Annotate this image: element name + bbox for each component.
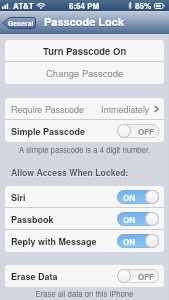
- staticText: Allow Access When Locked:: [11, 167, 129, 179]
- staticText: Erase all data on this iPhone: [5, 288, 164, 299]
- staticText: Require Passcode: [11, 103, 85, 116]
- staticText: OFF: [138, 271, 154, 282]
- staticText: ON: [123, 214, 135, 225]
- staticText: ON: [123, 236, 135, 247]
- button[interactable]: Require Passcode: [5, 98, 164, 120]
- staticText: A simple passcode is a 4 digit number.: [5, 144, 164, 155]
- button[interactable]: General: [2, 17, 36, 29]
- staticText: 6:54 PM: [69, 0, 100, 11]
- staticText: OFF: [138, 126, 154, 137]
- button[interactable]: On: [117, 212, 159, 226]
- staticText: 85%: [135, 0, 152, 11]
- button[interactable]: On: [117, 190, 159, 204]
- button[interactable]: Erase Data: [5, 265, 164, 287]
- button[interactable]: Passbook: [5, 208, 164, 230]
- staticText: AT&T: [13, 0, 34, 11]
- button[interactable]: Siri: [5, 186, 164, 208]
- staticText: Allow Access When Locked:: [11, 166, 129, 178]
- staticText: Passcode Lock: [44, 15, 125, 31]
- staticText: General: [8, 18, 34, 28]
- button[interactable]: Off: [117, 124, 159, 138]
- staticText: Turn Passcode On: [43, 44, 127, 58]
- button[interactable]: Turn Passcode On: [5, 40, 164, 62]
- button[interactable]: Reply with Message: [5, 230, 164, 252]
- staticText: Reply with Message: [11, 235, 97, 248]
- button[interactable]: Change Passcode: [5, 62, 164, 84]
- button[interactable]: On: [117, 234, 159, 248]
- staticText: Simple Passcode: [11, 125, 86, 138]
- button[interactable]: Simple Passcode: [5, 120, 164, 142]
- button[interactable]: Off: [117, 269, 159, 283]
- staticText: Change Passcode: [46, 66, 124, 80]
- staticText: ON: [123, 192, 135, 203]
- staticText: Siri: [11, 191, 26, 204]
- staticText: Passcode Lock: [44, 14, 125, 30]
- staticText: Passbook: [11, 213, 54, 226]
- staticText: Erase Data: [11, 270, 58, 283]
- staticText: Immediately: [101, 103, 150, 116]
